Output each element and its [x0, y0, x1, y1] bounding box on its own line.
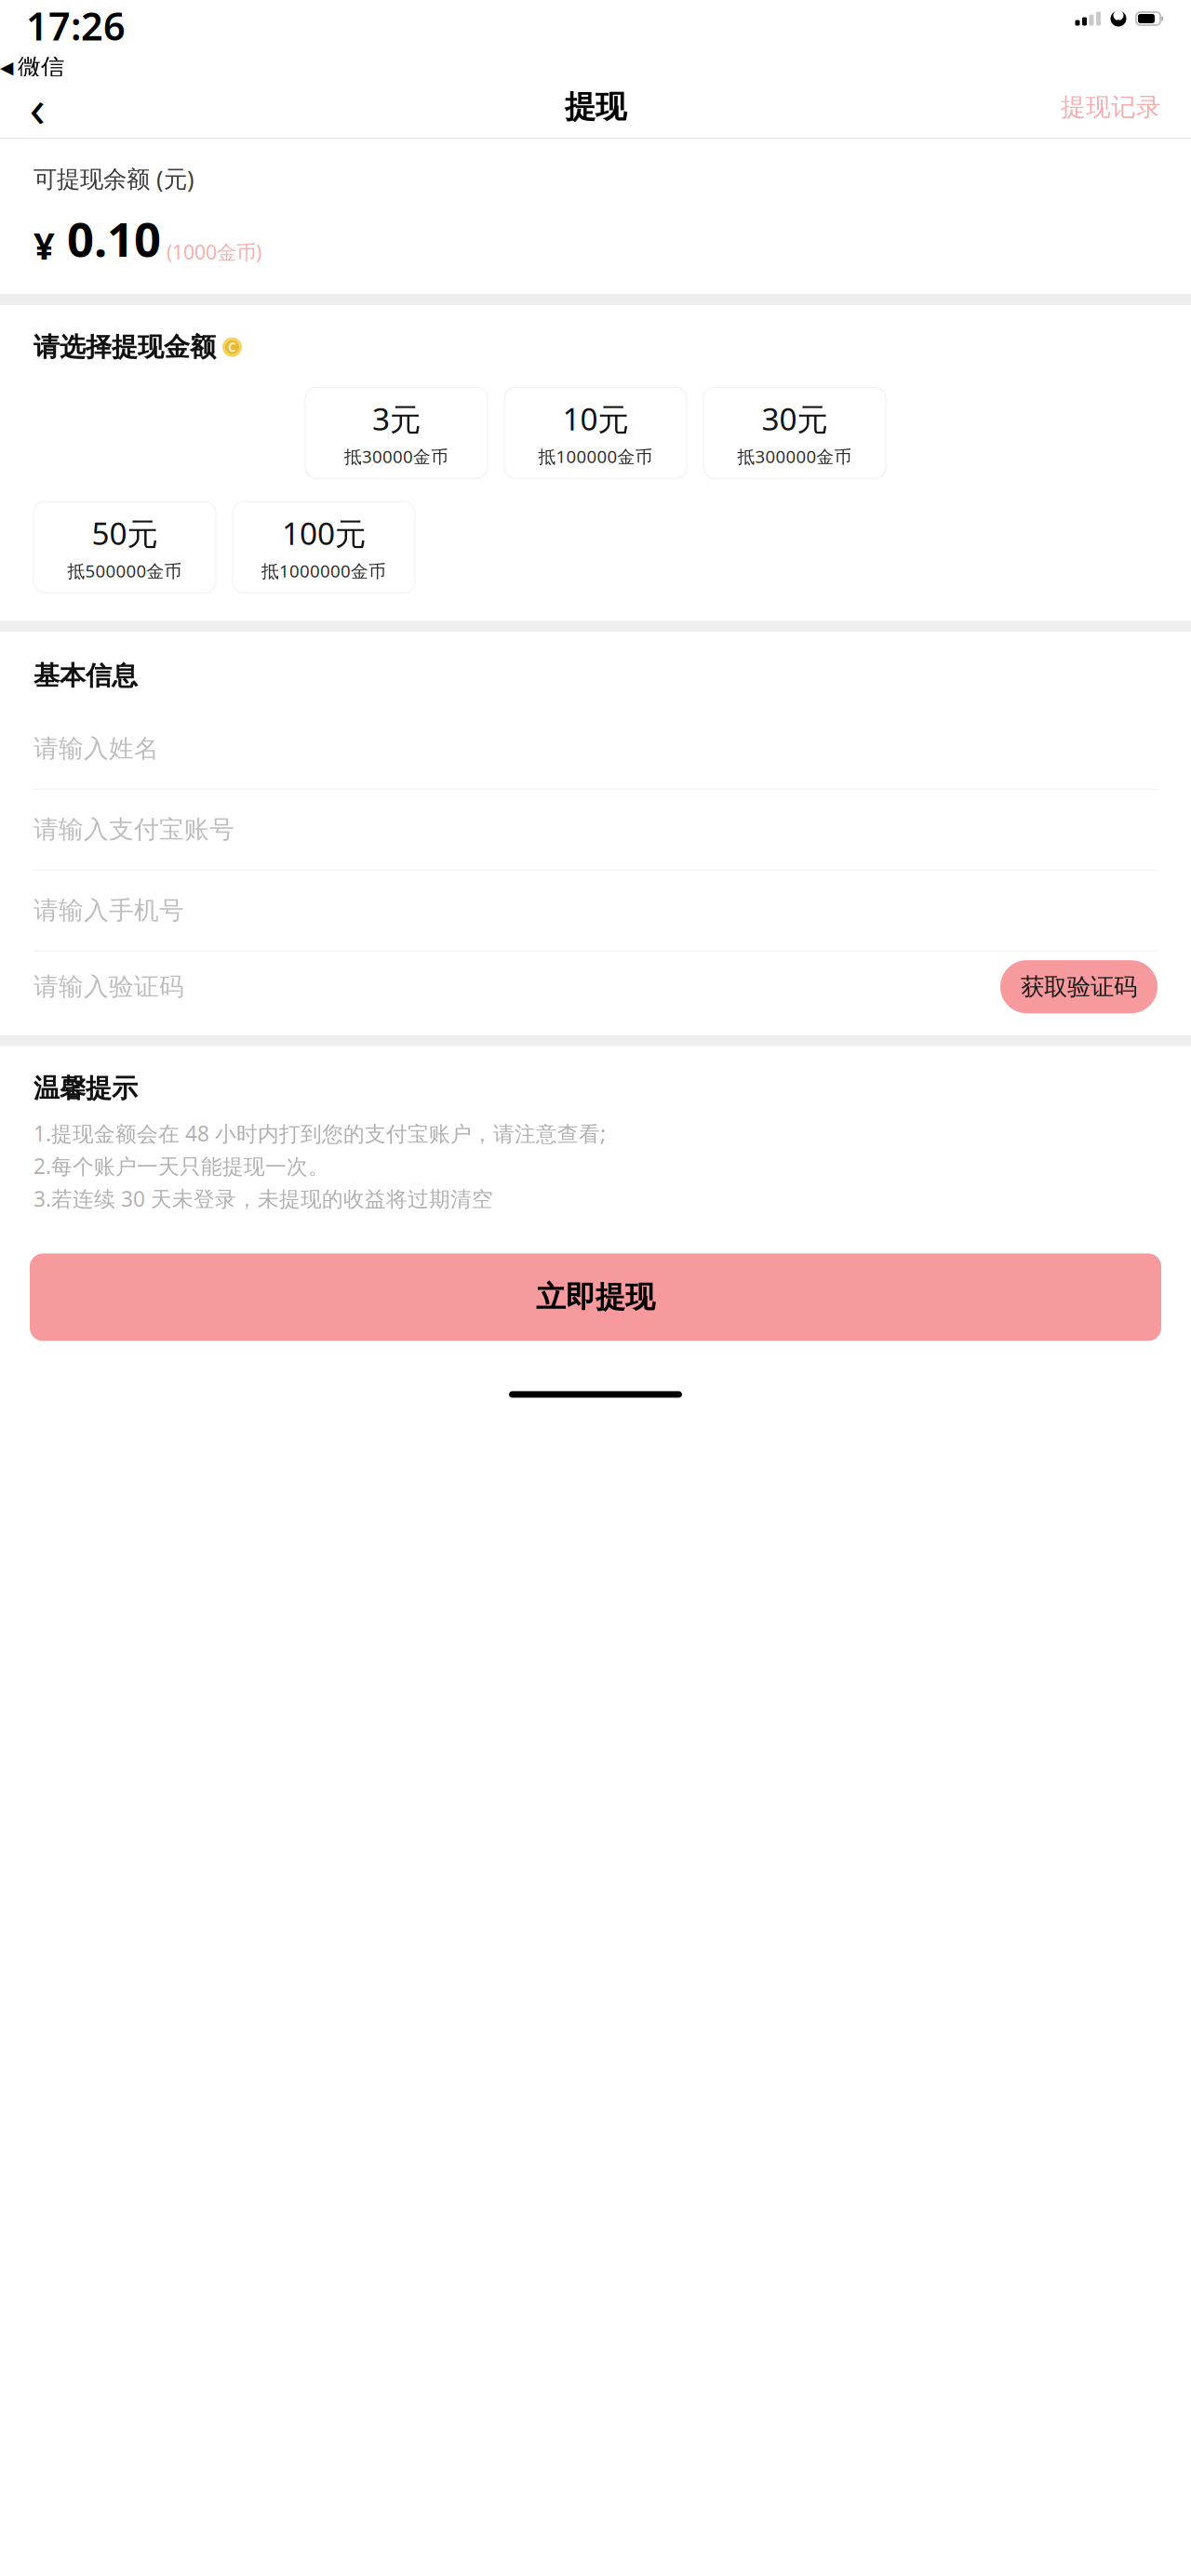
staticText: 0.10 — [55, 207, 161, 270]
button[interactable]: 获取验证码 — [1000, 960, 1158, 1013]
staticText: 获取验证码 — [1021, 972, 1137, 1001]
staticText: 30元 — [762, 398, 828, 439]
staticText: ¥ — [33, 220, 55, 270]
button[interactable]: 提现记录 — [1055, 84, 1167, 130]
button[interactable]: 50元 — [33, 502, 216, 593]
staticText: 请选择提现金额 — [33, 331, 216, 363]
staticText: 抵100000金币 — [538, 445, 653, 468]
staticText: ‹ — [29, 72, 45, 142]
staticText: 可提现余额 (元) — [33, 163, 194, 194]
staticText: 提现记录 — [1061, 92, 1161, 122]
staticText: 请输入手机号 — [33, 895, 184, 926]
staticText: 请输入验证码 — [33, 972, 184, 1002]
staticText: 基本信息 — [33, 660, 138, 692]
staticText: 提现 — [565, 88, 626, 126]
button[interactable]: 10元 — [504, 387, 687, 478]
button[interactable]: 立即提现 — [30, 1253, 1161, 1341]
staticText: 3.若连续 30 天未登录，未提现的收益将过期清空 — [33, 1185, 493, 1213]
staticText: 17:26 — [26, 0, 126, 51]
button[interactable]: 30元 — [703, 387, 886, 478]
staticText: 100元 — [282, 512, 366, 554]
staticText: 1.提现金额会在 48 小时内打到您的支付宝账户，请注意查看; — [33, 1119, 606, 1147]
button[interactable]: 100元 — [233, 502, 415, 593]
staticText: (1000金币) — [161, 239, 261, 265]
staticText: 请输入姓名 — [33, 733, 159, 764]
staticText: 2.每个账户一天只能提现一次。 — [33, 1152, 329, 1180]
staticText: 抵500000金币 — [67, 559, 182, 582]
staticText: 3元 — [372, 398, 421, 439]
staticText: 10元 — [562, 398, 629, 439]
button[interactable]: Back — [11, 83, 63, 131]
staticText: 50元 — [92, 512, 158, 554]
staticText: 温馨提示 — [33, 1072, 138, 1104]
staticText: 立即提现 — [536, 1279, 655, 1316]
staticText: 请输入支付宝账号 — [33, 814, 234, 845]
staticText: 抵300000金币 — [737, 445, 852, 468]
staticText: 微信 — [18, 53, 64, 82]
staticText: 抵1000000金币 — [261, 559, 386, 582]
staticText: C — [228, 339, 236, 355]
staticText: ◀ — [0, 58, 13, 77]
staticText: 抵30000金币 — [344, 445, 448, 468]
button[interactable]: 3元 — [305, 387, 488, 478]
